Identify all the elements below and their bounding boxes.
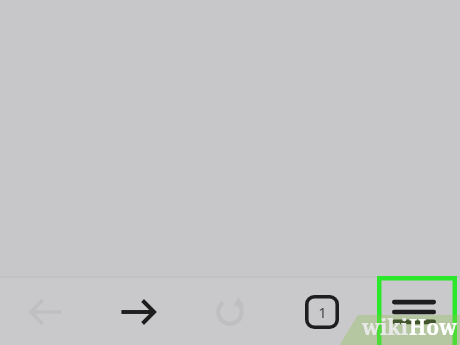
staticText: 1	[318, 302, 327, 322]
button[interactable]: Menu	[368, 278, 460, 345]
staticText: How	[409, 313, 458, 342]
staticText: wiki	[362, 313, 409, 342]
button[interactable]: Tabs	[276, 278, 368, 345]
button[interactable]: Forward	[92, 278, 184, 345]
